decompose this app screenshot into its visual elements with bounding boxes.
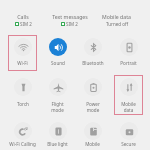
staticText: SIM 2 xyxy=(66,21,78,27)
button[interactable]: Mobile data xyxy=(114,75,143,115)
staticText: Text messages xyxy=(52,13,88,20)
button[interactable]: Power mode xyxy=(78,75,107,115)
staticText: Power mode xyxy=(86,101,100,113)
staticText: Mobile xyxy=(85,141,100,147)
staticText: Wi-Fi Calling xyxy=(9,141,36,147)
staticText: Secure xyxy=(121,141,136,147)
staticText: Sound xyxy=(51,60,65,66)
staticText: SIM 2 xyxy=(20,21,32,27)
button[interactable]: Flight mode xyxy=(43,75,72,115)
button[interactable]: Text messages xyxy=(46,13,93,27)
button[interactable]: Bluetooth xyxy=(78,35,107,71)
button[interactable]: Torch xyxy=(8,75,37,115)
button[interactable]: Portrait xyxy=(114,35,143,71)
button[interactable]: Sound xyxy=(43,35,72,71)
staticText: Flight mode xyxy=(51,101,64,113)
staticText: Calls xyxy=(17,13,29,20)
button[interactable]: Mobile xyxy=(78,119,107,150)
button[interactable]: Blue light xyxy=(43,119,72,150)
staticText: Blue light xyxy=(47,141,68,147)
button[interactable]: Mobile data xyxy=(93,13,140,27)
staticText: Bluetooth xyxy=(82,60,104,66)
button[interactable]: Secure xyxy=(114,119,143,150)
staticText: Mobile data xyxy=(121,101,136,113)
button[interactable]: Calls xyxy=(0,13,46,27)
staticText: Portrait xyxy=(120,60,137,66)
staticText: Wi-Fi xyxy=(17,60,28,66)
staticText: Turned off xyxy=(106,21,128,27)
staticText: Mobile data xyxy=(102,13,131,20)
button[interactable]: Wi-Fi Calling xyxy=(8,119,37,150)
staticText: Torch xyxy=(17,101,29,107)
button[interactable]: Wi-Fi xyxy=(8,35,37,71)
